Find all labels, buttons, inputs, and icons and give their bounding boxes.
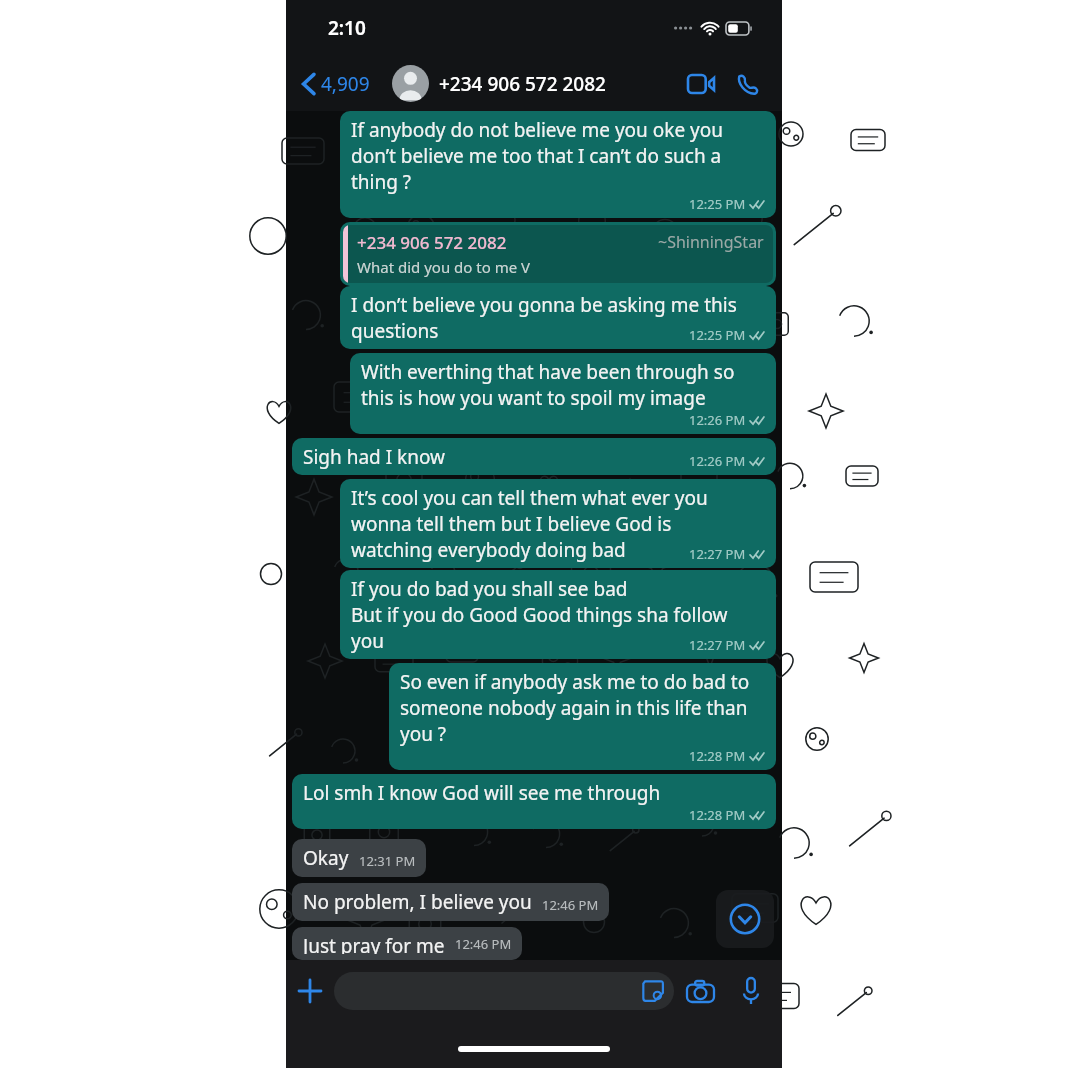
staticText: No problem, I believe you [303,889,532,915]
button[interactable]: Okay [292,839,426,877]
staticText: 12:26 PM [689,452,746,470]
button[interactable]: Video call [678,61,724,107]
button[interactable]: Stickers [640,978,666,1004]
staticText: It’s cool you can tell them what ever yo… [351,485,708,511]
button[interactable]: Just pray for me [292,927,522,960]
button[interactable]: With everthing that have been through so [350,353,776,434]
staticText: 4,909 [321,71,370,97]
staticText: So even if anybody ask me to do bad to [400,669,750,695]
staticText: this is how you want to spoil my image [361,385,706,411]
button[interactable]: Voice call [724,60,772,108]
button[interactable]: Lol smh I know God will see me through [292,774,776,829]
staticText: 12:27 PM [689,636,746,654]
button[interactable]: It’s cool you can tell them what ever yo… [340,479,776,568]
staticText: questions [351,318,439,344]
button[interactable]: Voice message [726,966,776,1016]
button[interactable]: +234 906 572 2082 [340,222,776,286]
button[interactable]: If you do bad you shall see bad [340,570,776,659]
staticText: 12:25 PM [689,326,746,344]
staticText: thing ? [351,169,412,195]
button[interactable]: So even if anybody ask me to do bad to [389,663,776,770]
staticText: If anybody do not believe me you oke you [351,117,724,143]
staticText: 2:10 [328,15,366,41]
staticText: don’t believe me too that I can’t do suc… [351,143,722,169]
button[interactable]: Scroll to bottom [716,890,774,948]
button[interactable]: Attach [286,967,334,1015]
staticText: wonna tell them but I believe God is [351,511,672,537]
staticText: 12:25 PM [689,195,746,213]
button[interactable]: Sigh had I know [292,438,776,475]
staticText: +234 906 572 2082 [357,231,507,254]
staticText: I don’t believe you gonna be asking me t… [351,292,737,318]
staticText: watching everybody doing bad [351,537,626,563]
staticText: 12:46 PM [542,896,599,914]
staticText: 12:28 PM [689,806,746,824]
staticText: you ? [400,721,447,747]
button[interactable]: If anybody do not believe me you oke you [340,111,776,218]
staticText: What did you do to me V [357,257,531,277]
staticText: Sigh had I know [303,444,446,470]
staticText: you [351,628,384,654]
staticText: +234 906 572 2082 [439,71,606,97]
staticText: 12:28 PM [689,747,746,765]
staticText: ~ShinningStar [658,231,764,253]
staticText: 12:46 PM [455,935,512,953]
staticText: 12:26 PM [689,411,746,429]
button[interactable]: +234 906 572 2082 [392,65,678,102]
button[interactable]: No problem, I believe you [292,883,609,921]
staticText: Lol smh I know God will see me through [303,780,661,806]
staticText: If you do bad you shall see bad [351,576,628,602]
staticText: Okay [303,845,349,871]
staticText: 12:31 PM [359,852,416,870]
staticText: But if you do Good Good things sha follo… [351,602,728,628]
button[interactable]: I don’t believe you gonna be asking me t… [340,286,776,349]
staticText: With everthing that have been through so [361,359,735,385]
staticText: Just pray for me [303,933,445,954]
staticText: someone nobody again in this life than [400,695,748,721]
button[interactable]: Back to chats [286,67,374,101]
button[interactable]: Camera [674,965,726,1017]
button[interactable]: Stickers [334,972,674,1010]
staticText: 12:27 PM [689,545,746,563]
